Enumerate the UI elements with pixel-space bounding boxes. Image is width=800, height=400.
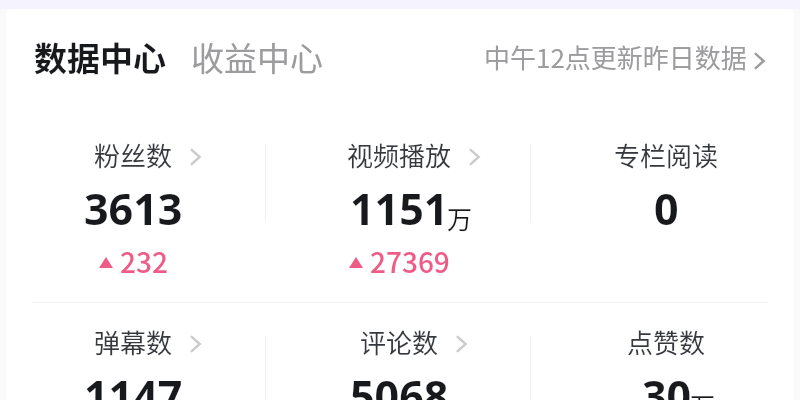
staticText: 27369 <box>370 241 450 282</box>
staticText: 3613 <box>84 179 183 238</box>
other: Open 粉丝数 details <box>190 148 201 166</box>
other: Open 评论数 details <box>456 335 467 353</box>
staticText: 粉丝数 <box>94 136 173 174</box>
staticText: 0 <box>654 179 679 238</box>
staticText: 1147 <box>84 366 183 400</box>
button[interactable]: 数据中心 <box>34 33 166 81</box>
staticText: 点赞数 <box>627 323 706 361</box>
other: Open 视频播放 details <box>469 148 480 166</box>
staticText: 中午12点更新昨日数据 <box>484 38 747 76</box>
staticText: 万 <box>447 200 473 236</box>
other: Open 弹幕数 details <box>190 335 201 353</box>
staticText: 数据中心 <box>34 33 166 81</box>
staticText: 1151 <box>350 179 449 238</box>
button[interactable]: 视频播放 <box>266 110 533 290</box>
button[interactable]: 收益中心 <box>191 33 323 81</box>
button[interactable]: 中午12点更新昨日数据 <box>484 38 765 76</box>
button[interactable]: 粉丝数 <box>0 110 266 290</box>
staticText: 专栏阅读 <box>614 136 719 174</box>
button[interactable]: 专栏阅读 <box>533 110 800 290</box>
staticText: 弹幕数 <box>94 323 173 361</box>
button[interactable]: 评论数 <box>266 306 533 400</box>
button[interactable]: 弹幕数 <box>0 306 266 400</box>
staticText: 30 <box>642 366 692 400</box>
staticText: 万 <box>690 387 716 400</box>
staticText: 评论数 <box>360 323 439 361</box>
staticText: 视频播放 <box>347 136 452 174</box>
staticText: 收益中心 <box>191 33 323 81</box>
staticText: 232 <box>120 241 168 282</box>
staticText: 5068 <box>350 366 449 400</box>
button[interactable]: 点赞数 <box>533 306 800 400</box>
